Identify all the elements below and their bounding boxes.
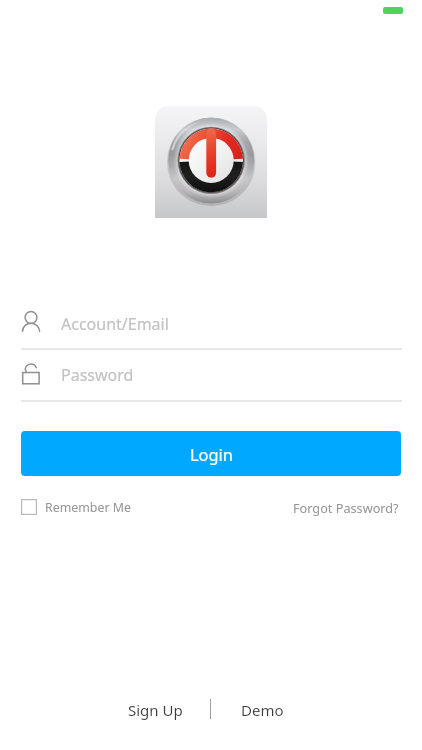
staticText: Forgot Password? <box>293 499 399 516</box>
button[interactable]: Remember Me <box>21 495 132 519</box>
button[interactable]: Login <box>21 431 401 476</box>
button[interactable]: Account/Email <box>21 305 402 349</box>
button[interactable]: Forgot Password? <box>287 495 393 519</box>
staticText: Demo <box>241 700 284 720</box>
other: App logo <box>155 106 267 218</box>
staticText: Remember Me <box>45 499 132 516</box>
button[interactable]: Sign Up <box>118 697 173 723</box>
button[interactable]: Demo <box>232 697 275 723</box>
staticText: Sign Up <box>128 700 183 720</box>
staticText: Password <box>61 364 134 386</box>
button[interactable]: Password <box>21 357 402 402</box>
staticText: Login <box>190 443 233 465</box>
staticText: Account/Email <box>61 313 169 335</box>
